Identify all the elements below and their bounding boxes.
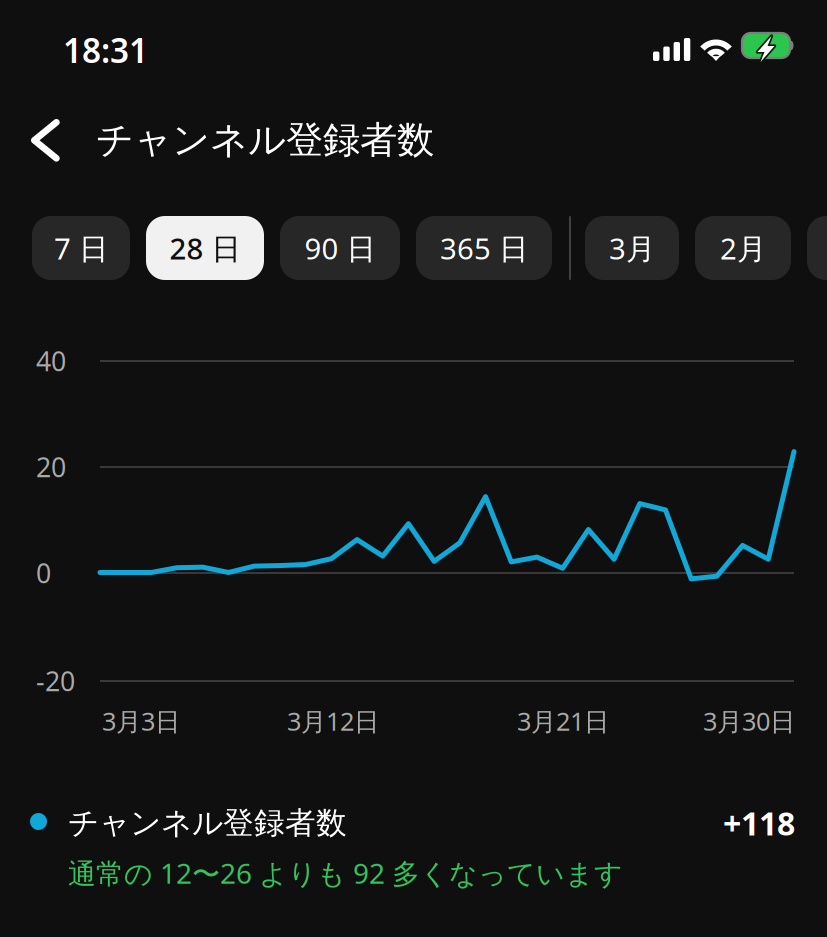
staticText: チャンネル登録者数 [68,804,347,842]
staticText: 40 [36,343,66,379]
button[interactable]: 90 日 [280,216,400,280]
staticText: 0 [36,555,51,591]
button[interactable]: 戻る [0,92,92,182]
button[interactable]: 3月 [585,216,679,280]
staticText: 20 [36,449,66,485]
staticText: 90 日 [304,228,375,267]
staticText: 通常の 12〜26 よりも 92 多くなっています [68,854,623,892]
button[interactable]: チャンネル登録者数 [0,790,827,910]
staticText: 3月30日 [703,704,795,738]
staticText: 18:31 [63,28,148,72]
staticText: チャンネル登録者数 [96,117,434,163]
button[interactable]: 7 日 [32,216,130,280]
button[interactable]: 2月 [695,216,791,280]
staticText: 3月 [609,228,655,267]
button[interactable]: 365 日 [416,216,552,280]
staticText: 2月 [720,228,766,267]
staticText: 3月21日 [517,704,609,738]
button[interactable]: 28 日 [146,216,264,280]
staticText: -20 [36,663,75,699]
button[interactable]: 1月 [807,216,827,280]
staticText: 3月3日 [102,704,180,738]
staticText: +118 [723,802,795,844]
staticText: 365 日 [440,228,528,267]
staticText: 3月12日 [287,704,379,738]
staticText: 7 日 [54,228,108,267]
staticText: 28 日 [169,228,240,267]
